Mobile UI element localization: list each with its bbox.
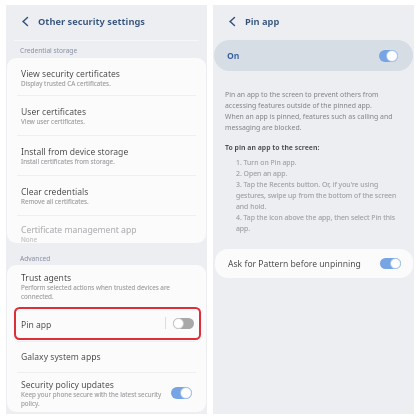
staticText: Install certificates from storage. (21, 157, 115, 166)
staticText: User certificates (21, 106, 87, 117)
button[interactable]: Back (226, 15, 239, 28)
button[interactable]: Switch on (171, 387, 192, 399)
button[interactable]: Install from device storage (7, 136, 206, 175)
staticText: To pin an app to the screen: (225, 142, 320, 153)
staticText: Install from device storage (21, 146, 129, 157)
staticText: None (21, 235, 38, 243)
button[interactable]: Switch on (380, 258, 401, 269)
button[interactable]: Ask for Pattern before unpinning (215, 249, 413, 278)
staticText: Clear credentials (21, 186, 89, 197)
staticText: On (227, 50, 379, 61)
button[interactable]: View security certificates (7, 58, 206, 95)
button[interactable]: Security policy updates (7, 373, 206, 412)
staticText: Pin app (245, 16, 280, 28)
button[interactable]: User certificates (7, 96, 206, 135)
button[interactable]: Clear credentials (7, 176, 206, 215)
button[interactable]: Galaxy system apps (7, 342, 206, 372)
staticText: Trust agents (21, 272, 72, 283)
staticText: Credential storage (20, 46, 78, 54)
staticText: 1. Turn on Pin app. 2. Open an app. 3. T… (236, 157, 397, 234)
staticText: Remove all certificates. (21, 197, 89, 206)
staticText: Certificate management app (21, 224, 137, 235)
button[interactable]: Pin app (7, 309, 206, 341)
button[interactable]: On (214, 40, 413, 71)
button[interactable]: Switch on (379, 50, 398, 62)
staticText: Advanced (20, 254, 51, 262)
staticText: Keep your phone secure with the latest s… (21, 390, 177, 408)
button[interactable]: Trust agents (7, 265, 206, 308)
staticText: Pin an app to the screen to prevent othe… (225, 89, 393, 133)
staticText: Galaxy system apps (21, 351, 101, 362)
button[interactable]: Switch off (173, 318, 194, 329)
staticText: View user certificates. (21, 117, 86, 126)
staticText: Pin app (21, 319, 52, 330)
staticText: Security policy updates (21, 379, 114, 390)
button[interactable]: Back (19, 15, 32, 28)
staticText: Display trusted CA certificates. (21, 79, 111, 88)
staticText: Ask for Pattern before unpinning (228, 258, 380, 269)
staticText: View security certificates (21, 68, 120, 79)
staticText: Other security settings (38, 16, 145, 28)
button[interactable]: Certificate management app (7, 216, 206, 243)
staticText: Perform selected actions when trusted de… (21, 283, 193, 301)
